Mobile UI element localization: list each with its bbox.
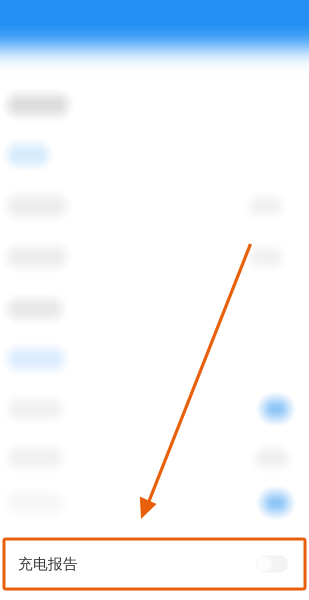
button[interactable]: 充电报告 xyxy=(4,539,305,589)
staticText: 充电报告 xyxy=(18,555,78,573)
